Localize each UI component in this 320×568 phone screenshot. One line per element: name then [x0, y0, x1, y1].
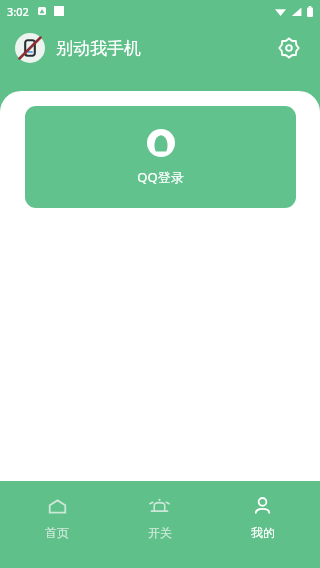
button[interactable]: 首页: [6, 481, 108, 555]
staticText: 别动我手机: [56, 38, 141, 59]
staticText: 我的: [251, 525, 275, 540]
button[interactable]: 我的: [211, 481, 314, 555]
staticText: 开关: [148, 525, 172, 540]
button[interactable]: 开关: [108, 481, 211, 555]
staticText: QQ登录: [137, 168, 184, 186]
button[interactable]: Settings: [272, 31, 306, 65]
staticText: 3:02: [7, 4, 29, 19]
button[interactable]: QQ登录: [25, 106, 296, 208]
staticText: 首页: [45, 525, 69, 540]
